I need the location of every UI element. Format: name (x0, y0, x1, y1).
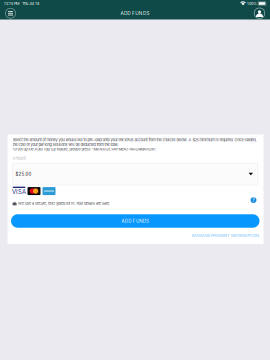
staticText: MANAGE PAYMENT INFORMATION (192, 233, 259, 238)
staticText: ? (252, 197, 255, 203)
staticText: ADD FUNDS (121, 10, 149, 16)
button[interactable]: Help (249, 187, 258, 204)
staticText: ADD FUNDS (122, 218, 149, 224)
staticText: 12:15 PM Thu Jul 18 (4, 1, 39, 6)
staticText: 100% (246, 1, 258, 6)
button[interactable]: $25.00 (12, 163, 258, 185)
staticText: To set up the Auto Top Up feature, pleas… (12, 147, 156, 152)
staticText: $25.00 (15, 171, 31, 177)
button[interactable]: Account (252, 7, 270, 19)
staticText: VISA (12, 188, 26, 195)
staticText: Amount (12, 156, 25, 160)
button[interactable]: ADD FUNDS (11, 214, 259, 228)
button[interactable]: MANAGE PAYMENT INFORMATION (192, 233, 259, 238)
button[interactable]: Menu (0, 7, 18, 19)
staticText: Select the amount of money you would lik… (12, 137, 256, 147)
staticText: We use a secure, encrypted form. Your de… (18, 201, 110, 206)
